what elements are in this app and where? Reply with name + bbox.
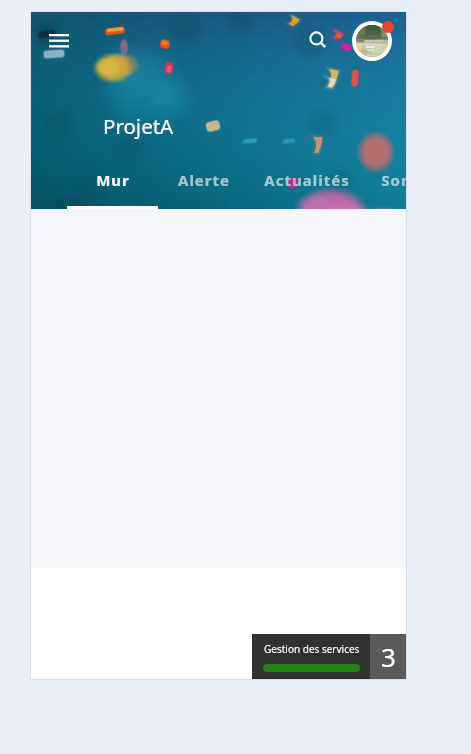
staticText: 3 bbox=[381, 639, 396, 674]
button[interactable]: Gestion des services bbox=[252, 634, 370, 679]
staticText: Actualités bbox=[264, 170, 350, 190]
button[interactable]: Search bbox=[300, 22, 338, 60]
button[interactable]: Alerte bbox=[161, 151, 247, 209]
button[interactable]: Mur bbox=[67, 151, 158, 209]
button[interactable]: 3 bbox=[370, 634, 406, 679]
button[interactable]: Profile bbox=[350, 19, 394, 63]
button[interactable]: Sondage bbox=[358, 151, 406, 209]
staticText: Sondage bbox=[381, 170, 406, 190]
button[interactable]: Actualités bbox=[252, 151, 362, 209]
staticText: Mur bbox=[96, 170, 130, 190]
staticText: ProjetA bbox=[103, 112, 174, 140]
staticText: Gestion des services bbox=[264, 642, 360, 656]
button[interactable]: Open navigation menu bbox=[37, 19, 81, 63]
staticText: Alerte bbox=[178, 170, 230, 190]
